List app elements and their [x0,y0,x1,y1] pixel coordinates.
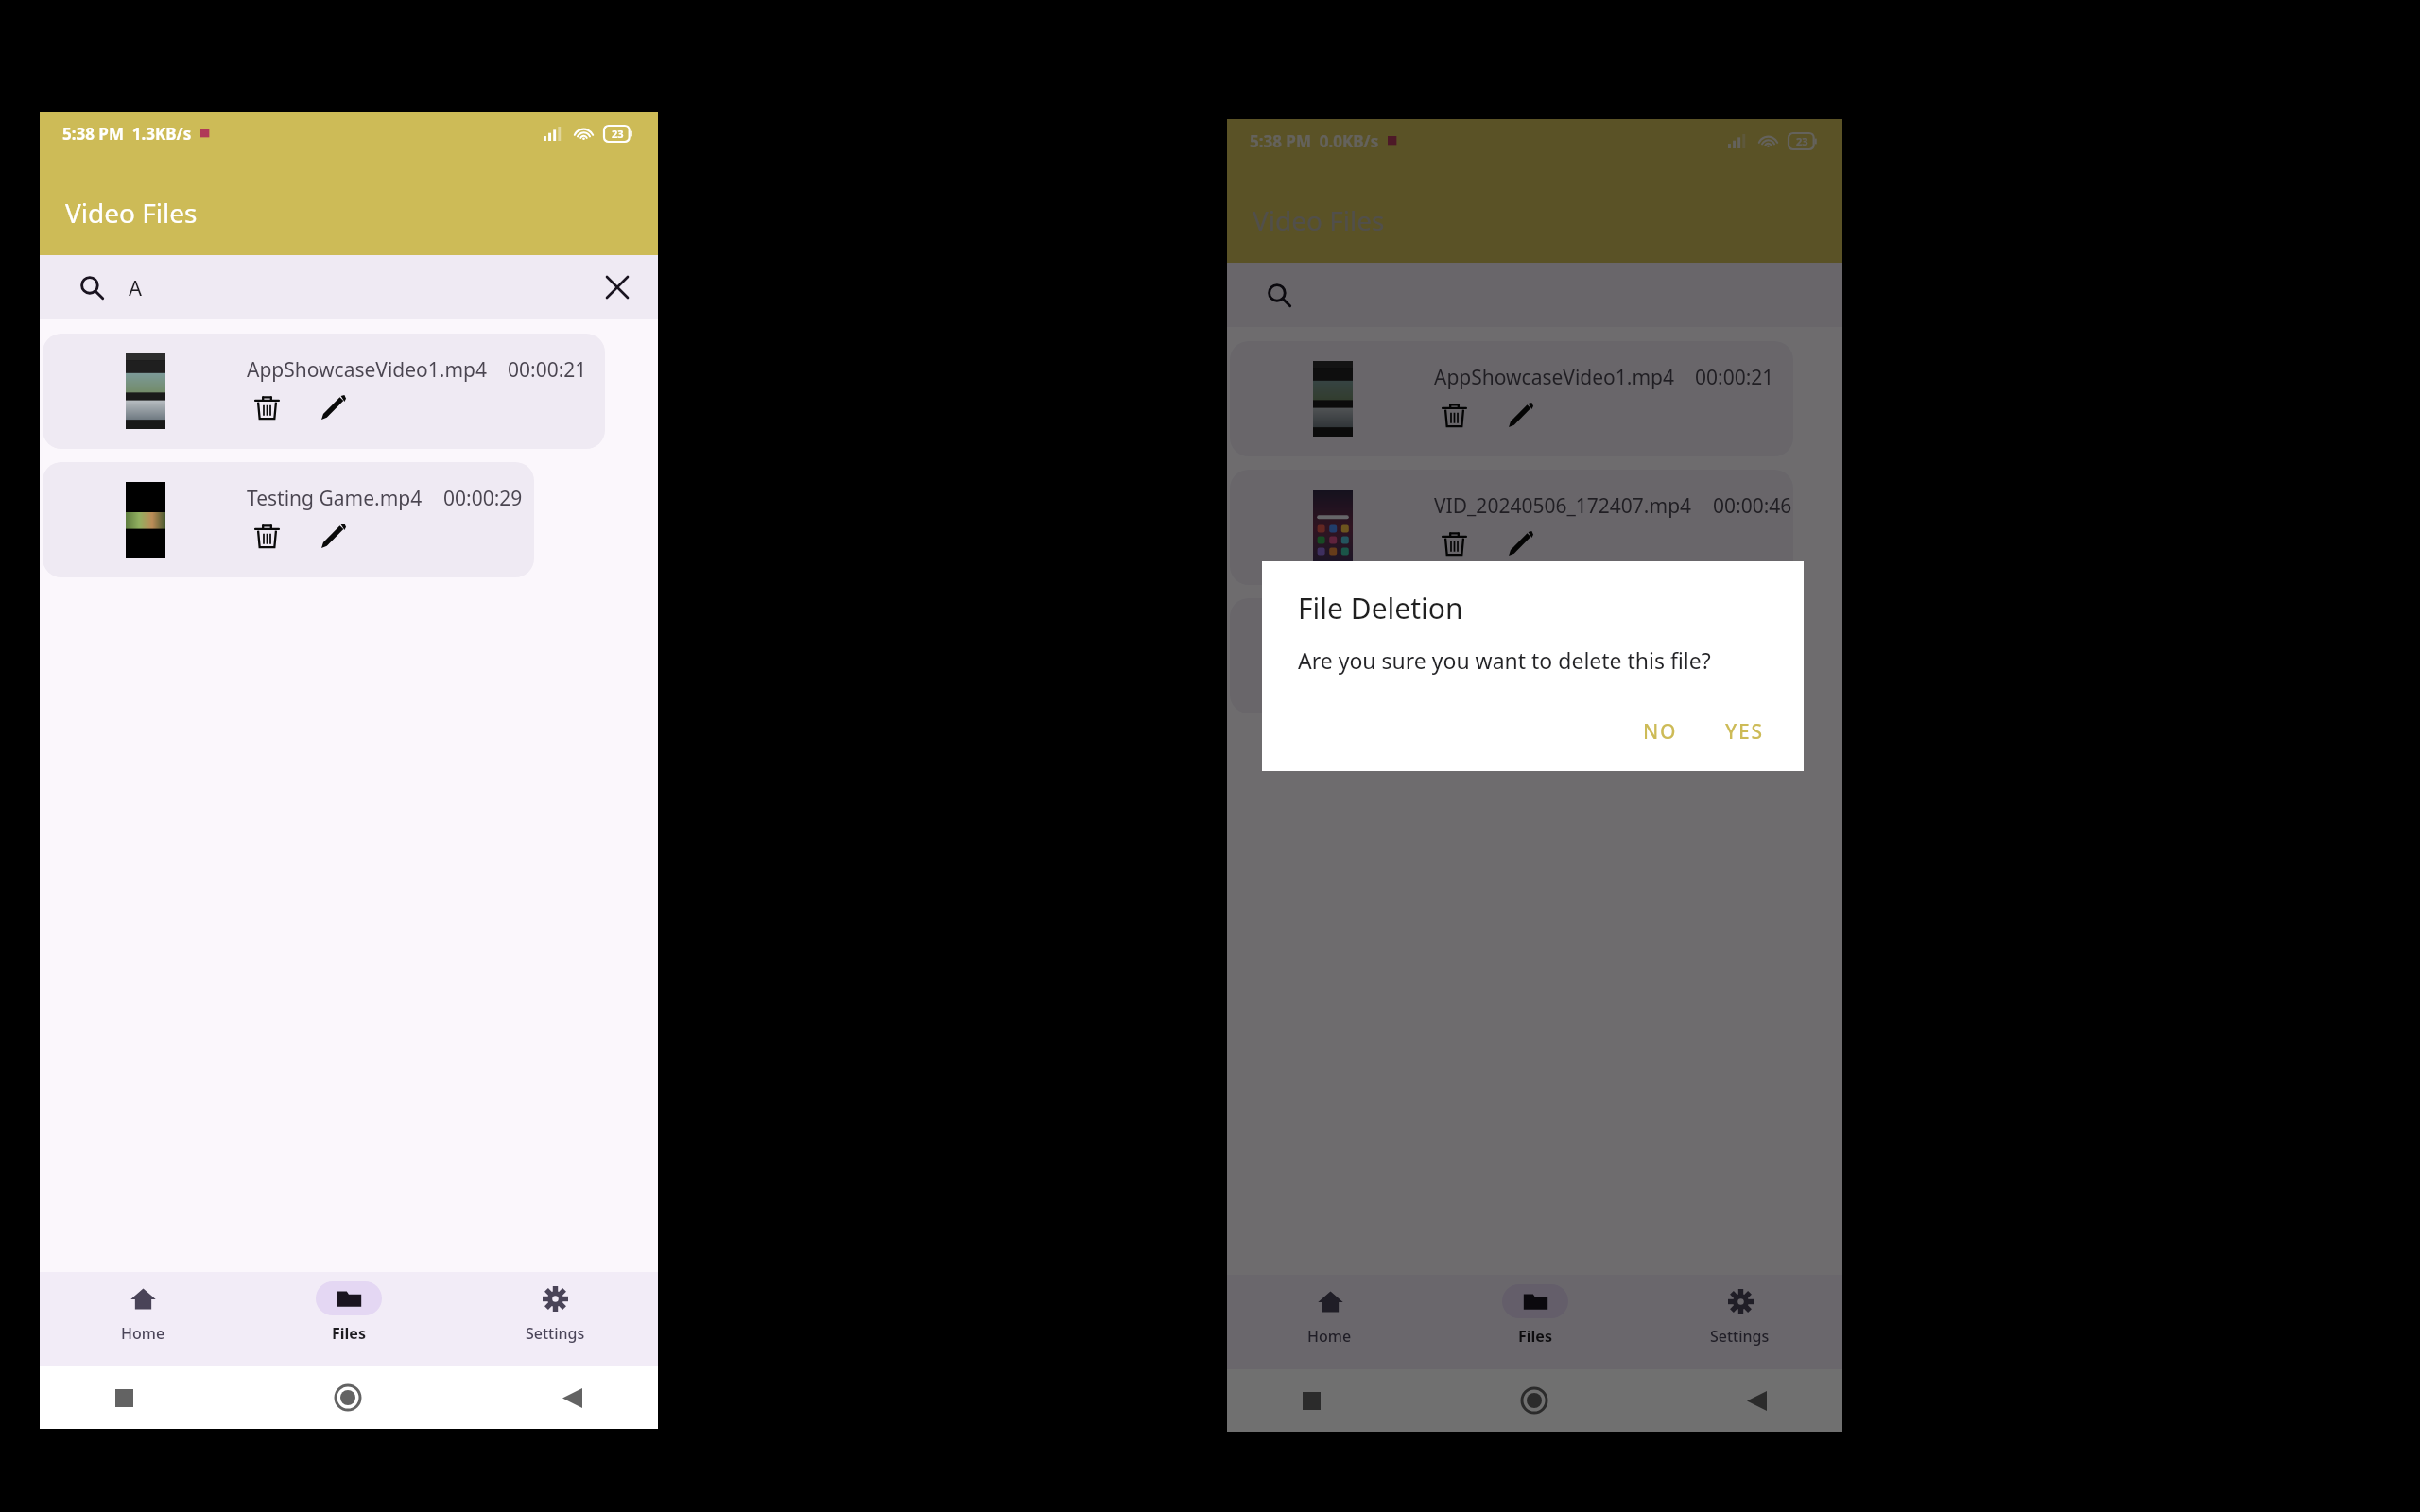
staticText: Settings [526,1323,585,1344]
button[interactable]: A [40,255,658,319]
button[interactable]: Files [246,1272,452,1366]
button[interactable]: Rename [313,387,353,427]
button[interactable]: Delete [247,516,286,556]
staticText: Settings [1710,1326,1770,1347]
button[interactable]: Home [1227,1275,1432,1369]
button[interactable]: Testing Game.mp4 [43,462,534,577]
button[interactable]: Delete [247,387,286,427]
staticText: A [129,273,143,301]
staticText: NO [1643,718,1678,746]
button[interactable]: Rename [1500,524,1540,563]
button[interactable]: Settings [452,1272,658,1366]
staticText: Video Files [1253,202,1385,238]
button[interactable]: Rename [1500,652,1540,692]
staticText: 00:00:21 [508,356,587,384]
staticText: 00:00:29 [443,485,523,512]
button[interactable]: YES [1710,710,1779,754]
button[interactable] [1227,263,1842,327]
staticText: 00:00:46 [1713,492,1792,520]
staticText: Are you sure you want to delete this fil… [1298,645,1711,675]
button[interactable]: Testing Game.mp4 [1230,598,1670,713]
staticText: Files [332,1323,366,1344]
button[interactable]: Rename [1500,395,1540,435]
staticText: Home [1307,1326,1352,1347]
button[interactable]: Rename [313,516,353,556]
button[interactable]: Delete [1434,524,1474,563]
staticText: Testing Game.mp4 [247,485,423,512]
button[interactable]: Home [40,1272,246,1366]
button[interactable]: NO [1628,710,1693,754]
button[interactable]: AppShowcaseVideo1.mp4 [43,334,605,449]
button[interactable]: Settings [1637,1275,1842,1369]
staticText: YES [1725,718,1764,746]
staticText: Home [121,1323,165,1344]
staticText: Files [1518,1326,1552,1347]
staticText: 00:00:21 [1695,364,1774,391]
staticText: File Deletion [1298,589,1463,627]
button[interactable]: VID_20240506_172407.mp4 [1230,470,1793,585]
staticText: Video Files [65,195,198,231]
button[interactable]: Clear search [601,271,633,303]
button[interactable]: Delete [1434,395,1474,435]
staticText: 23 [612,127,624,141]
staticText: VID_20240506_172407.mp4 [1434,492,1692,520]
button[interactable]: Delete [1434,652,1474,692]
staticText: 23 [1796,134,1808,148]
staticText: AppShowcaseVideo1.mp4 [1434,364,1674,391]
button[interactable]: Files [1432,1275,1637,1369]
staticText: AppShowcaseVideo1.mp4 [247,356,487,384]
staticText: 5:38 PM 0.0KB/s [1250,130,1379,152]
button[interactable]: AppShowcaseVideo1.mp4 [1230,341,1793,456]
staticText: 5:38 PM 1.3KB/s [62,123,192,145]
